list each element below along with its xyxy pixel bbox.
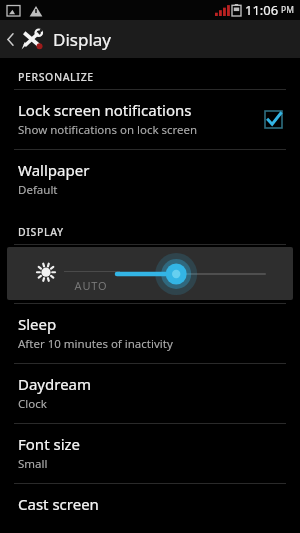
button[interactable]: Cast screen — [0, 484, 300, 525]
staticText: Sleep — [18, 314, 57, 334]
staticText: Daydream — [18, 374, 92, 394]
button[interactable]: Brightness slider — [111, 250, 271, 298]
button[interactable]: Auto brightness — [27, 255, 65, 293]
button[interactable]: Daydream — [0, 364, 300, 423]
staticText: Wallpaper — [18, 160, 90, 180]
button[interactable]: Lock screen notifications — [0, 90, 300, 149]
staticText: Auto-rotate screen — [18, 278, 150, 298]
staticText: PM — [281, 4, 294, 16]
staticText: Cast screen — [18, 494, 99, 514]
staticText: 11:06 — [245, 1, 279, 19]
staticText: Font size — [18, 434, 81, 454]
button[interactable]: Lock screen notifications toggle — [260, 106, 286, 132]
button[interactable]: Sleep — [0, 304, 300, 363]
staticText: Default — [18, 182, 58, 198]
staticText: After 10 minutes of inactivity — [18, 336, 173, 352]
staticText: DISPLAY — [18, 225, 64, 239]
button[interactable]: Font size — [0, 424, 300, 483]
staticText: Display — [53, 28, 111, 51]
staticText: Lock screen notifications — [18, 100, 192, 120]
staticText: Show notifications on lock screen — [18, 122, 198, 138]
staticText: Small — [18, 456, 48, 472]
button[interactable]: Back to Settings — [0, 20, 117, 58]
staticText: AUTO — [69, 278, 113, 293]
button[interactable]: Wallpaper — [0, 150, 300, 209]
staticText: PERSONALIZE — [18, 70, 94, 84]
staticText: Clock — [18, 396, 47, 412]
